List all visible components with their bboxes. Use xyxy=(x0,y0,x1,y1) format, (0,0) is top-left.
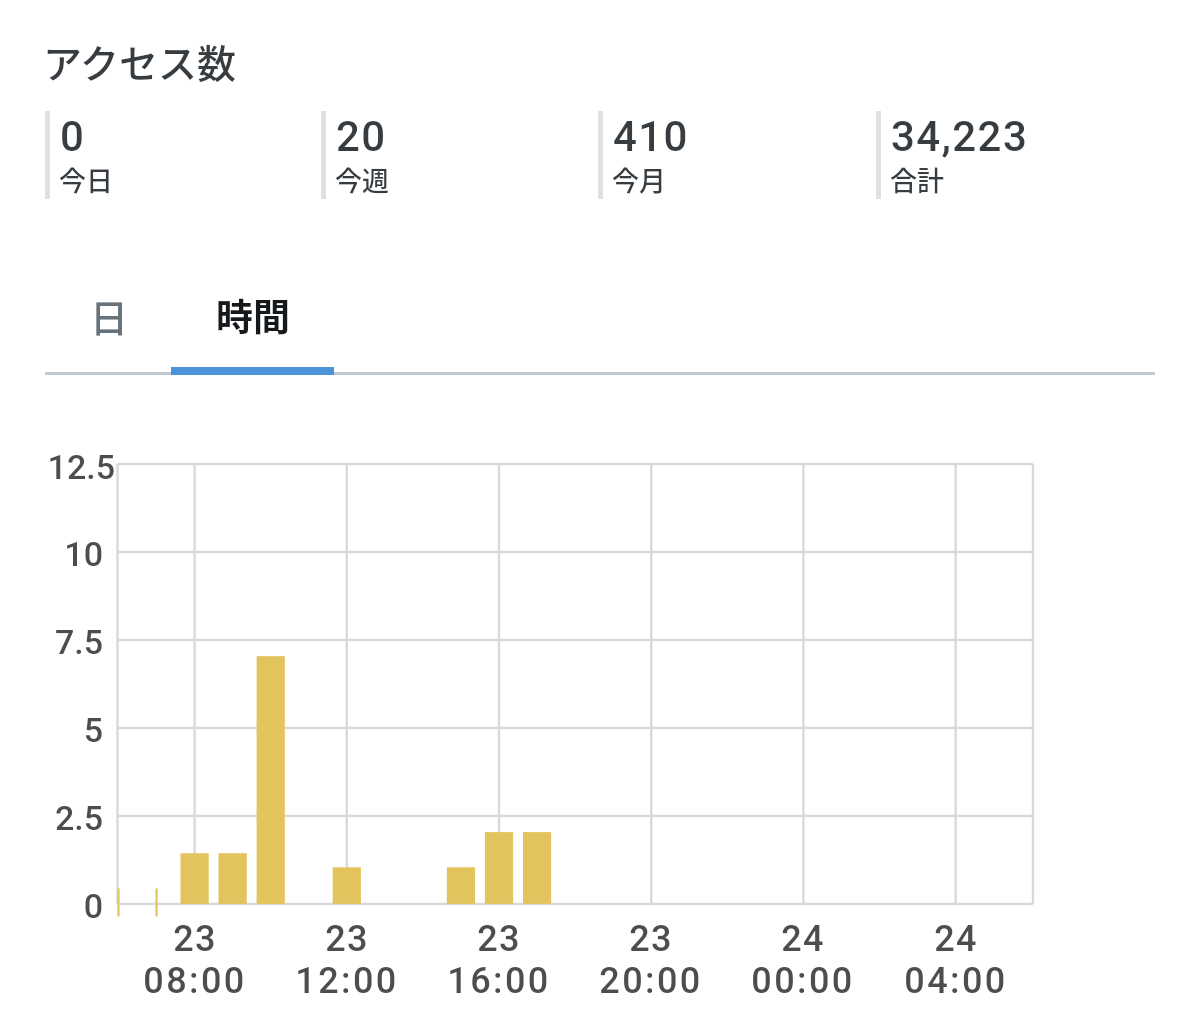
staticText: 0 xyxy=(60,112,86,161)
staticText: 23 xyxy=(325,918,369,960)
button[interactable]: 日 xyxy=(48,263,171,367)
staticText: 12:00 xyxy=(295,960,399,1002)
staticText: 時間 xyxy=(216,288,290,342)
staticText: 00:00 xyxy=(751,960,855,1002)
button[interactable]: 34,223 xyxy=(876,111,1141,201)
staticText: 10 xyxy=(64,534,103,574)
staticText: 0 xyxy=(83,886,103,926)
staticText: 23 xyxy=(173,918,217,960)
staticText: 410 xyxy=(613,112,689,161)
staticText: 2.5 xyxy=(54,798,103,838)
staticText: 16:00 xyxy=(447,960,551,1002)
staticText: 20:00 xyxy=(599,960,703,1002)
staticText: 合計 xyxy=(890,160,944,199)
staticText: 04:00 xyxy=(904,960,1008,1002)
staticText: 20 xyxy=(336,112,387,161)
staticText: 12.5 xyxy=(47,447,115,487)
staticText: 今週 xyxy=(335,160,389,199)
staticText: 23 xyxy=(477,918,521,960)
button[interactable]: 時間 xyxy=(171,263,334,367)
staticText: 24 xyxy=(934,918,978,960)
other: Hourly access chart xyxy=(0,0,1200,1023)
staticText: アクセス数 xyxy=(43,33,237,89)
staticText: 24 xyxy=(781,918,825,960)
staticText: 5 xyxy=(83,710,103,750)
staticText: 7.5 xyxy=(54,622,103,662)
button[interactable]: 0 xyxy=(45,111,310,201)
staticText: 34,223 xyxy=(891,112,1029,161)
staticText: 今日 xyxy=(59,160,113,199)
staticText: 日 xyxy=(90,288,129,343)
staticText: 今月 xyxy=(612,160,666,199)
button[interactable]: 20 xyxy=(321,111,586,201)
staticText: 08:00 xyxy=(143,960,247,1002)
staticText: 23 xyxy=(629,918,673,960)
button[interactable]: 410 xyxy=(598,111,863,201)
